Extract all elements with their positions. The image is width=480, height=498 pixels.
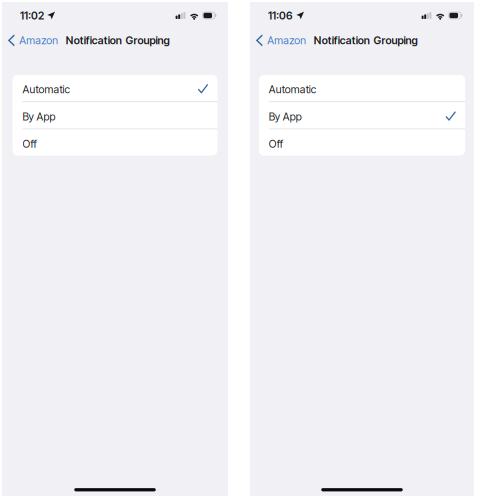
staticText: Notification: [66, 34, 122, 47]
button[interactable]: By App: [259, 102, 465, 128]
button[interactable]: Off: [259, 129, 465, 156]
staticText: Automatic: [269, 83, 316, 96]
staticText: Grouping: [373, 34, 417, 47]
staticText: Off: [269, 137, 283, 150]
button[interactable]: Amazon: [2, 31, 58, 50]
button[interactable]: Automatic: [12, 75, 217, 101]
staticText: Off: [22, 137, 36, 150]
staticText: Automatic: [22, 83, 69, 96]
button[interactable]: By App: [12, 102, 217, 128]
button[interactable]: Automatic: [259, 75, 465, 101]
staticText: 11:06: [268, 9, 293, 22]
staticText: 11:02: [20, 9, 44, 22]
staticText: Notification: [314, 34, 370, 47]
staticText: By App: [22, 110, 55, 123]
button[interactable]: Off: [12, 129, 217, 156]
staticText: Amazon: [19, 34, 58, 47]
staticText: Grouping: [125, 34, 169, 47]
staticText: By App: [269, 110, 302, 123]
staticText: Amazon: [267, 34, 306, 47]
button[interactable]: Amazon: [250, 31, 306, 50]
